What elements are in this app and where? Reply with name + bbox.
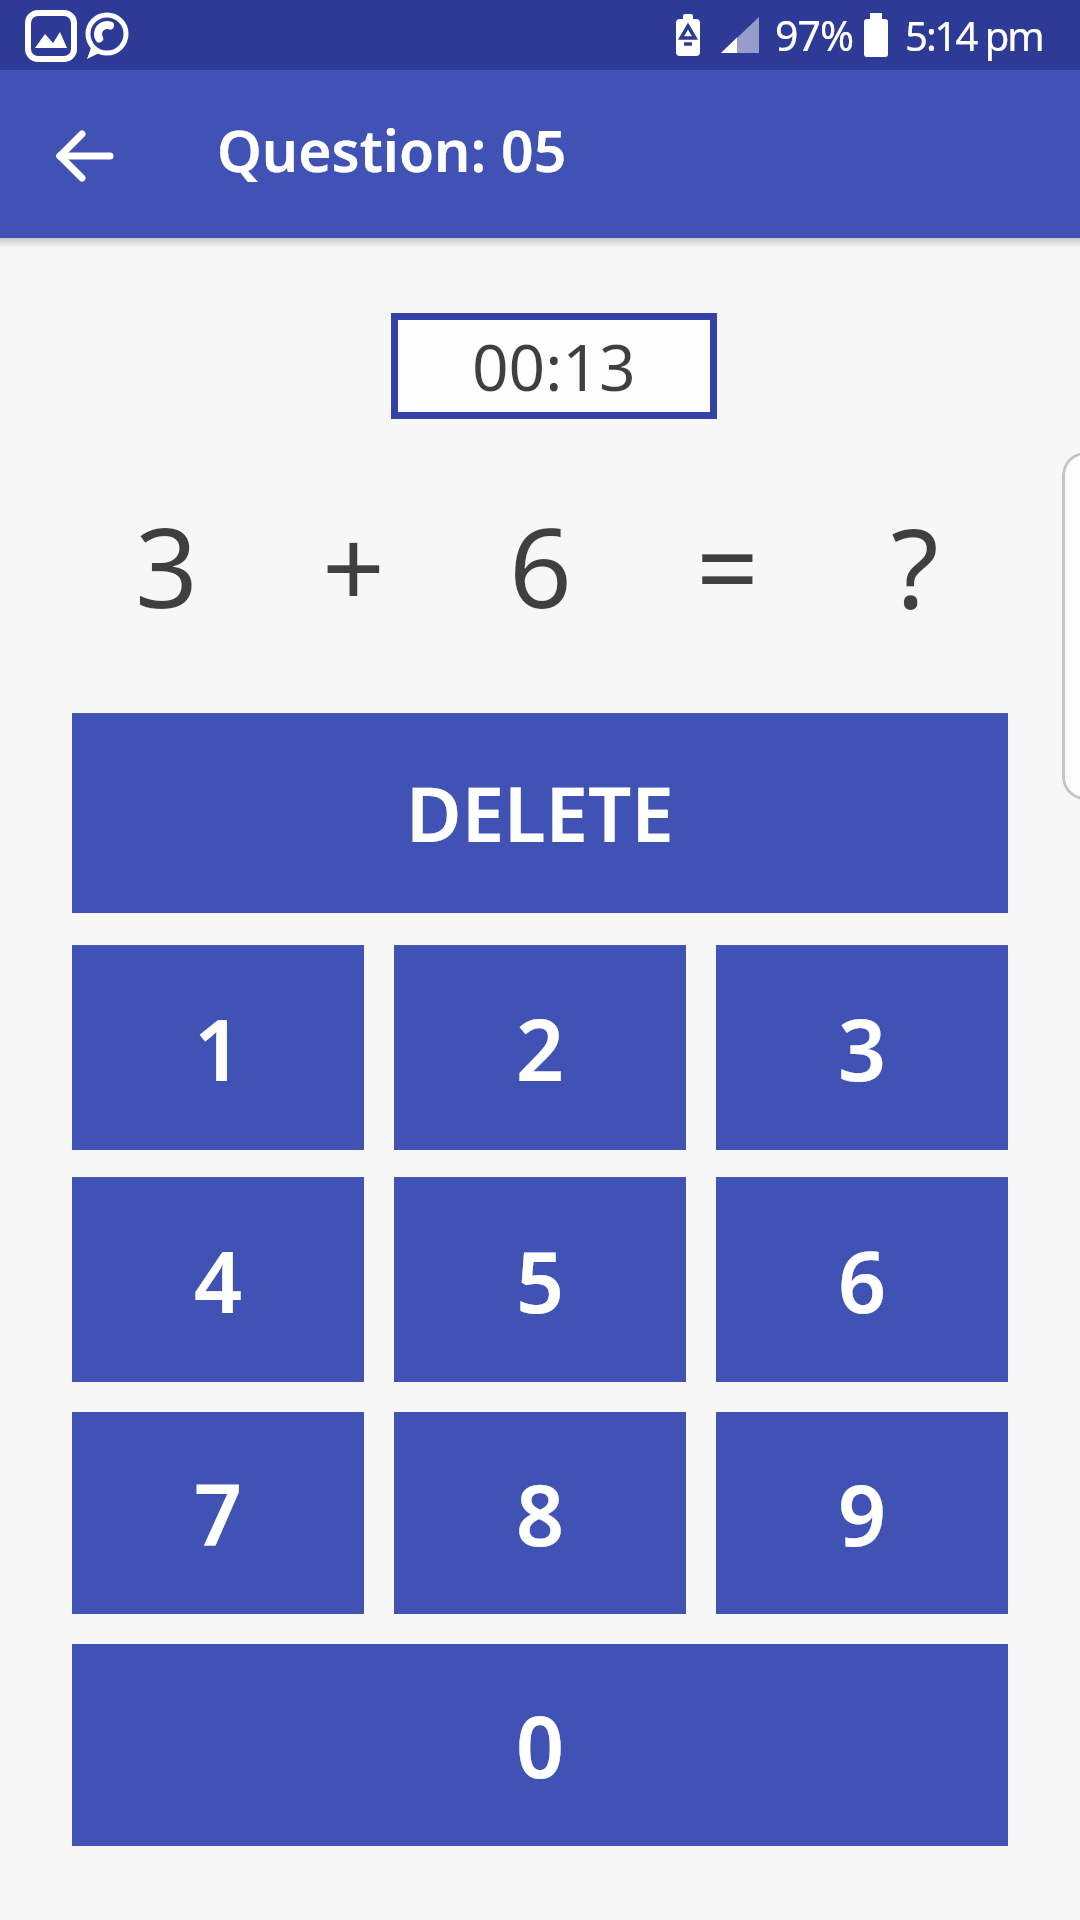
- button[interactable]: 2: [394, 945, 686, 1150]
- staticText: 5: [516, 1223, 565, 1337]
- button[interactable]: DELETE: [72, 713, 1008, 913]
- staticText: 3: [135, 490, 198, 640]
- staticText: 6: [838, 1223, 887, 1337]
- staticText: 97%: [775, 7, 853, 63]
- staticText: 9: [838, 1456, 887, 1570]
- staticText: +: [322, 490, 385, 640]
- staticText: 2: [516, 991, 565, 1105]
- button[interactable]: 8: [394, 1412, 686, 1614]
- staticText: 00:13: [472, 323, 636, 410]
- staticText: 5:14 pm: [905, 8, 1043, 62]
- staticText: 1: [194, 991, 243, 1105]
- staticText: ?: [891, 490, 939, 640]
- staticText: 0: [516, 1688, 565, 1802]
- staticText: DELETE: [406, 761, 674, 865]
- staticText: 8: [516, 1456, 565, 1570]
- staticText: 4: [194, 1223, 243, 1337]
- button[interactable]: 1: [72, 945, 364, 1150]
- button[interactable]: 7: [72, 1412, 364, 1614]
- button[interactable]: 5: [394, 1177, 686, 1382]
- staticText: Question: 05: [217, 111, 567, 189]
- button[interactable]: 4: [72, 1177, 364, 1382]
- button[interactable]: 3: [716, 945, 1008, 1150]
- button[interactable]: 0: [72, 1644, 1008, 1846]
- button[interactable]: 6: [716, 1177, 1008, 1382]
- button[interactable]: 9: [716, 1412, 1008, 1614]
- staticText: 6: [509, 490, 572, 640]
- staticText: 3: [838, 991, 887, 1105]
- button[interactable]: [40, 110, 132, 202]
- staticText: =: [696, 490, 759, 640]
- staticText: 7: [194, 1456, 243, 1570]
